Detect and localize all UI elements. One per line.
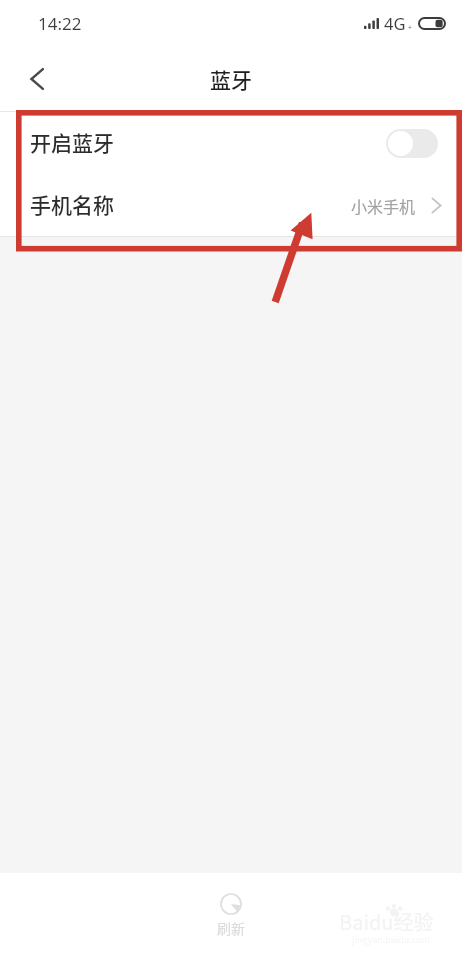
staticText: 小米手机 (351, 194, 416, 217)
staticText: + (408, 22, 412, 32)
staticText: 开启蓝牙 (30, 127, 114, 157)
staticText: 手机名称 (30, 189, 114, 219)
staticText: 14:22 (38, 12, 82, 35)
button[interactable]: Bluetooth toggle (386, 129, 438, 158)
staticText: 4G (384, 12, 406, 34)
button[interactable]: 开启蓝牙 (0, 112, 462, 174)
staticText: Baidu经验 (339, 907, 434, 936)
staticText: 刷新 (217, 918, 245, 938)
button[interactable]: Back (14, 56, 60, 102)
staticText: 蓝牙 (210, 64, 252, 94)
button[interactable]: 刷新 (217, 893, 245, 938)
button[interactable]: 手机名称 (0, 174, 462, 236)
